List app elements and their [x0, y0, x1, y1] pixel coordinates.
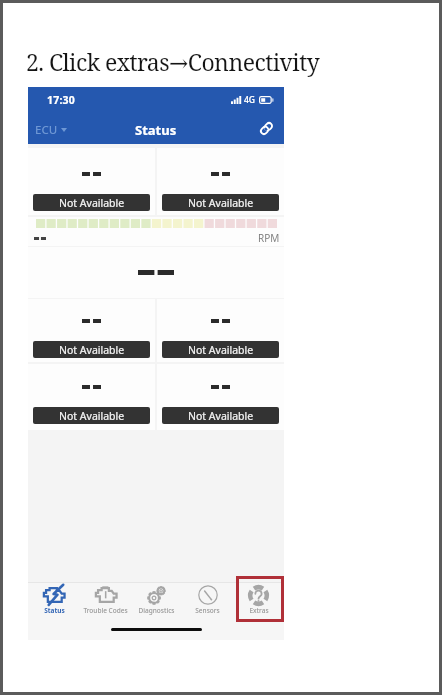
staticText: 2. Click extras→Connectivity: [26, 46, 320, 77]
staticText: ECU: [35, 122, 58, 138]
button[interactable]: [28, 247, 284, 298]
staticText: Status: [135, 121, 177, 139]
staticText: Not Available: [188, 196, 254, 210]
button[interactable]: Not Available: [157, 299, 284, 362]
staticText: RPM: [258, 231, 280, 245]
button[interactable]: Not Available: [157, 148, 284, 215]
staticText: Not Available: [188, 409, 254, 423]
staticText: 4G: [244, 94, 256, 106]
button[interactable]: Not Available: [28, 299, 155, 362]
staticText: Sensors: [195, 606, 220, 615]
button[interactable]: Status: [28, 583, 80, 619]
button[interactable]: Trouble Codes: [80, 583, 131, 619]
button[interactable]: Sensors: [182, 583, 233, 619]
staticText: Status: [44, 606, 65, 615]
button[interactable]: Not Available: [28, 364, 155, 430]
button[interactable]: ECU: [28, 122, 73, 138]
staticText: Trouble Codes: [83, 606, 128, 615]
staticText: Not Available: [59, 409, 125, 423]
staticText: Not Available: [59, 343, 125, 357]
button[interactable]: Not Available: [157, 364, 284, 430]
button[interactable]: Extras: [233, 583, 284, 619]
button[interactable]: Connect: [255, 117, 277, 139]
staticText: Extras: [249, 606, 269, 615]
button[interactable]: Diagnostics: [131, 583, 182, 619]
staticText: Diagnostics: [138, 606, 175, 615]
staticText: Not Available: [188, 343, 254, 357]
staticText: 17:30: [47, 93, 75, 107]
staticText: Not Available: [59, 196, 125, 210]
button[interactable]: Not Available: [28, 148, 155, 215]
